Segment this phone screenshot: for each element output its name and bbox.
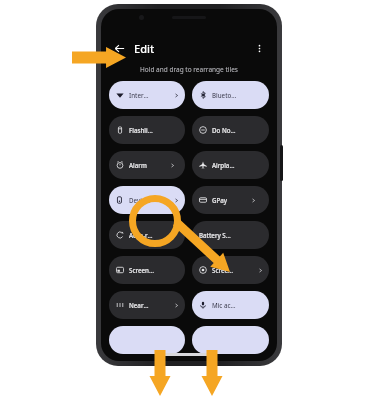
staticText: Airplane mode [212, 161, 237, 169]
staticText: GPay [212, 196, 228, 204]
staticText: Device controls [129, 196, 151, 204]
staticText: Alarm [129, 161, 147, 169]
staticText: Battery Saver [199, 231, 231, 239]
staticText: Bluetooth [212, 91, 237, 99]
staticText: Nearby Share [129, 301, 151, 309]
button[interactable]: More options [250, 39, 268, 57]
button[interactable]: Airplane mode [192, 151, 269, 179]
button[interactable] [192, 326, 269, 354]
button[interactable]: Flashlight [109, 116, 185, 144]
button[interactable]: Back [110, 39, 128, 57]
staticText: Screen record [212, 266, 235, 274]
button[interactable]: Screen record [192, 256, 269, 284]
staticText: Internet [129, 91, 151, 99]
button[interactable]: Battery Saver [192, 221, 269, 249]
button[interactable]: Do Not Disturb [192, 116, 269, 144]
button[interactable]: Nearby Share [109, 291, 185, 319]
staticText: Do Not Disturb [212, 126, 237, 134]
button[interactable]: Bluetooth [192, 81, 269, 109]
staticText: Mic access [212, 301, 237, 309]
button[interactable]: Mic access [192, 291, 269, 319]
button[interactable]: GPay [192, 186, 269, 214]
button[interactable]: Alarm [109, 151, 185, 179]
button[interactable]: Auto-rotate [109, 221, 185, 249]
staticText: Hold and drag to rearrange tiles [140, 65, 238, 74]
button[interactable]: Internet [109, 81, 185, 109]
button[interactable]: Device controls [109, 186, 185, 214]
staticText: Edit [134, 41, 155, 56]
staticText: Flashlight [129, 126, 154, 134]
button[interactable] [109, 326, 185, 354]
staticText: Screen Cast [129, 266, 154, 274]
button[interactable]: Screen Cast [109, 256, 185, 284]
staticText: Auto-rotate [129, 231, 154, 239]
